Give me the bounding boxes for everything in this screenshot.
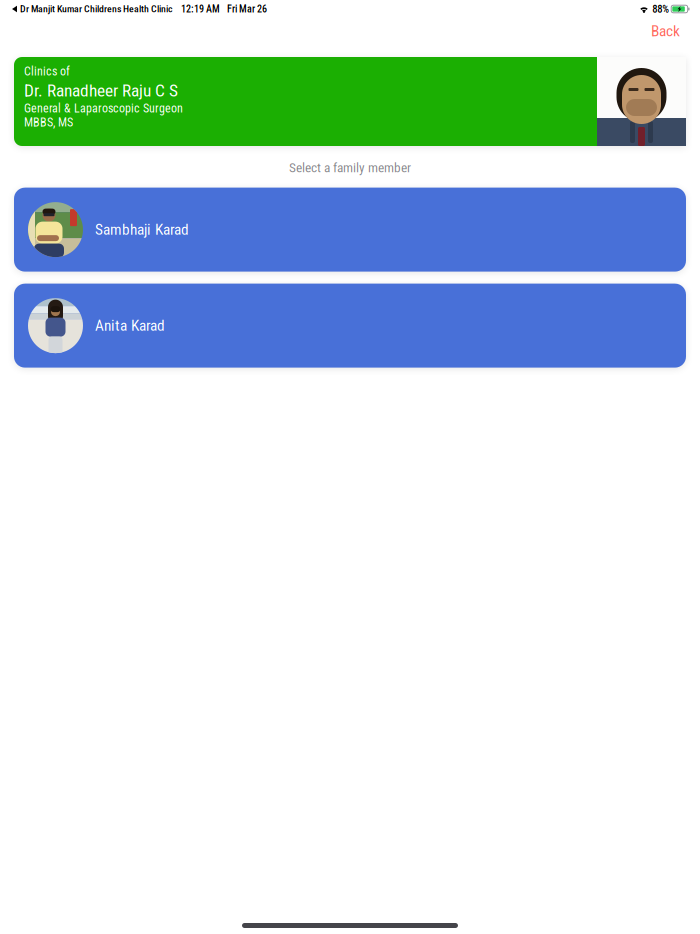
button[interactable]: Anita Karad bbox=[14, 284, 686, 368]
staticText: Dr. Ranadheer Raju C S bbox=[24, 80, 178, 101]
staticText: Back bbox=[651, 22, 680, 40]
staticText: Fri Mar 26 bbox=[227, 3, 267, 15]
staticText: Anita Karad bbox=[95, 317, 165, 335]
staticText: Sambhaji Karad bbox=[95, 221, 189, 239]
staticText: Select a family member bbox=[289, 160, 411, 176]
button[interactable]: Back bbox=[630, 15, 700, 43]
staticText: Dr Manjit Kumar Childrens Health Clinic bbox=[20, 3, 173, 15]
staticText: General & Laparoscopic Surgeon bbox=[24, 101, 183, 116]
staticText: 88% bbox=[652, 3, 669, 15]
staticText: 12:19 AM bbox=[181, 3, 220, 15]
staticText: MBBS, MS bbox=[24, 115, 73, 130]
button[interactable]: Sambhaji Karad bbox=[14, 188, 686, 272]
staticText: Clinics of bbox=[24, 64, 70, 79]
